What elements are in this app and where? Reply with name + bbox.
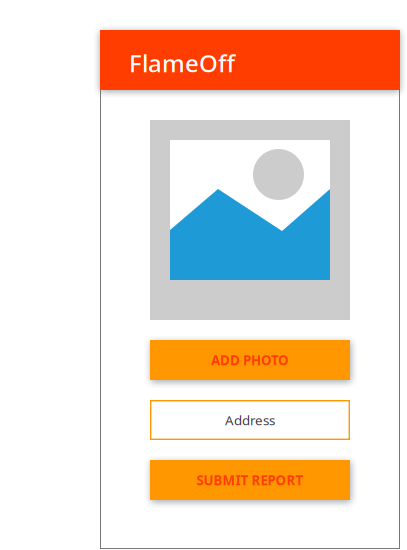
staticText: ADD PHOTO	[211, 351, 289, 369]
button[interactable]: SUBMIT REPORT	[150, 460, 350, 500]
staticText: FlameOff	[129, 47, 235, 79]
staticText: Address	[225, 411, 275, 429]
button[interactable]: ADD PHOTO	[150, 340, 350, 380]
staticText: SUBMIT REPORT	[196, 471, 303, 489]
button[interactable]: Address	[150, 400, 350, 440]
